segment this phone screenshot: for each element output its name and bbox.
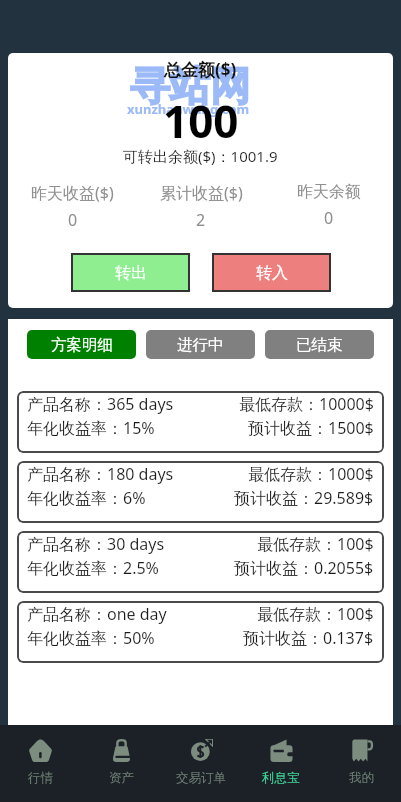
staticText: 年化收益率：6% xyxy=(27,487,146,509)
staticText: 产品名称：365 days xyxy=(27,393,174,415)
staticText: 预计收益：0.137$ xyxy=(243,627,374,649)
staticText: 转出 xyxy=(115,263,147,283)
staticText: 转入 xyxy=(256,263,288,283)
button[interactable]: 产品名称：180 days xyxy=(17,461,384,523)
staticText: 昨天余额 xyxy=(297,182,361,202)
staticText: xunzhanwang.com xyxy=(127,100,250,118)
staticText: 我的 xyxy=(349,770,374,786)
staticText: 年化收益率：2.5% xyxy=(27,557,159,579)
staticText: 累计收益($) xyxy=(160,182,243,204)
button[interactable]: 产品名称：one day xyxy=(17,601,384,663)
staticText: 交易订单 xyxy=(176,770,226,786)
button[interactable]: 交易订单 xyxy=(161,725,241,802)
button[interactable]: 产品名称：30 days xyxy=(17,531,384,593)
staticText: 可转出余额($)：1001.9 xyxy=(123,146,278,166)
button[interactable]: 转入 xyxy=(214,255,329,290)
staticText: 总金额($) xyxy=(164,58,237,81)
staticText: 年化收益率：15% xyxy=(27,417,155,439)
staticText: 预计收益：29.589$ xyxy=(234,487,374,509)
button[interactable]: 利息宝 xyxy=(241,725,321,802)
staticText: 已结束 xyxy=(296,335,343,355)
staticText: 昨天收益($) xyxy=(31,182,114,204)
staticText: 方案明细 xyxy=(51,335,113,355)
staticText: 0 xyxy=(68,209,78,231)
staticText: 预计收益：1500$ xyxy=(248,417,374,439)
staticText: 进行中 xyxy=(177,335,224,355)
staticText: 产品名称：30 days xyxy=(27,533,165,555)
button[interactable]: 我的 xyxy=(321,725,401,802)
button[interactable]: 行情 xyxy=(0,725,81,802)
staticText: 产品名称：one day xyxy=(27,603,167,625)
button[interactable]: 转出 xyxy=(73,255,188,290)
button[interactable]: 进行中 xyxy=(146,330,255,359)
button[interactable]: 资产 xyxy=(81,725,161,802)
button[interactable]: 方案明细 xyxy=(27,330,136,359)
staticText: 0 xyxy=(324,207,334,229)
staticText: 利息宝 xyxy=(262,770,300,786)
staticText: 行情 xyxy=(28,770,53,786)
staticText: 资产 xyxy=(109,770,134,786)
staticText: 预计收益：0.2055$ xyxy=(234,557,374,579)
staticText: 产品名称：180 days xyxy=(27,463,174,485)
staticText: 最低存款：100$ xyxy=(257,533,374,555)
staticText: 2 xyxy=(196,209,206,231)
staticText: 年化收益率：50% xyxy=(27,627,155,649)
staticText: 寻站网 xyxy=(130,61,250,111)
staticText: 最低存款：10000$ xyxy=(239,393,374,415)
button[interactable]: 已结束 xyxy=(265,330,374,359)
button[interactable]: 产品名称：365 days xyxy=(17,391,384,453)
staticText: 最低存款：100$ xyxy=(257,603,374,625)
staticText: 最低存款：1000$ xyxy=(248,463,374,485)
staticText: 100 xyxy=(163,91,239,151)
